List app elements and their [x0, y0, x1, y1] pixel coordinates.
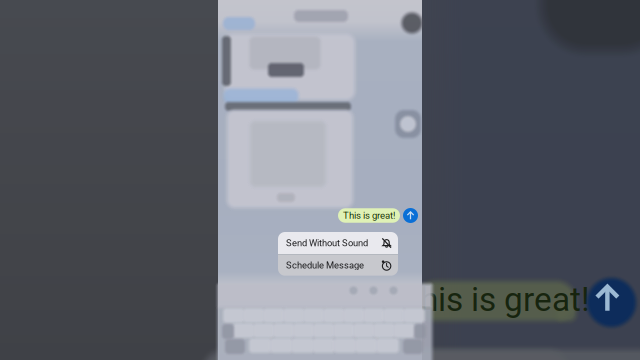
- staticText: This is great!: [343, 210, 395, 221]
- staticText: Schedule Message: [286, 260, 364, 271]
- staticText: his is great!: [420, 280, 590, 319]
- button[interactable]: Send Without Sound: [278, 232, 398, 254]
- staticText: Send Without Sound: [286, 237, 368, 248]
- button[interactable]: Schedule Message: [278, 255, 398, 276]
